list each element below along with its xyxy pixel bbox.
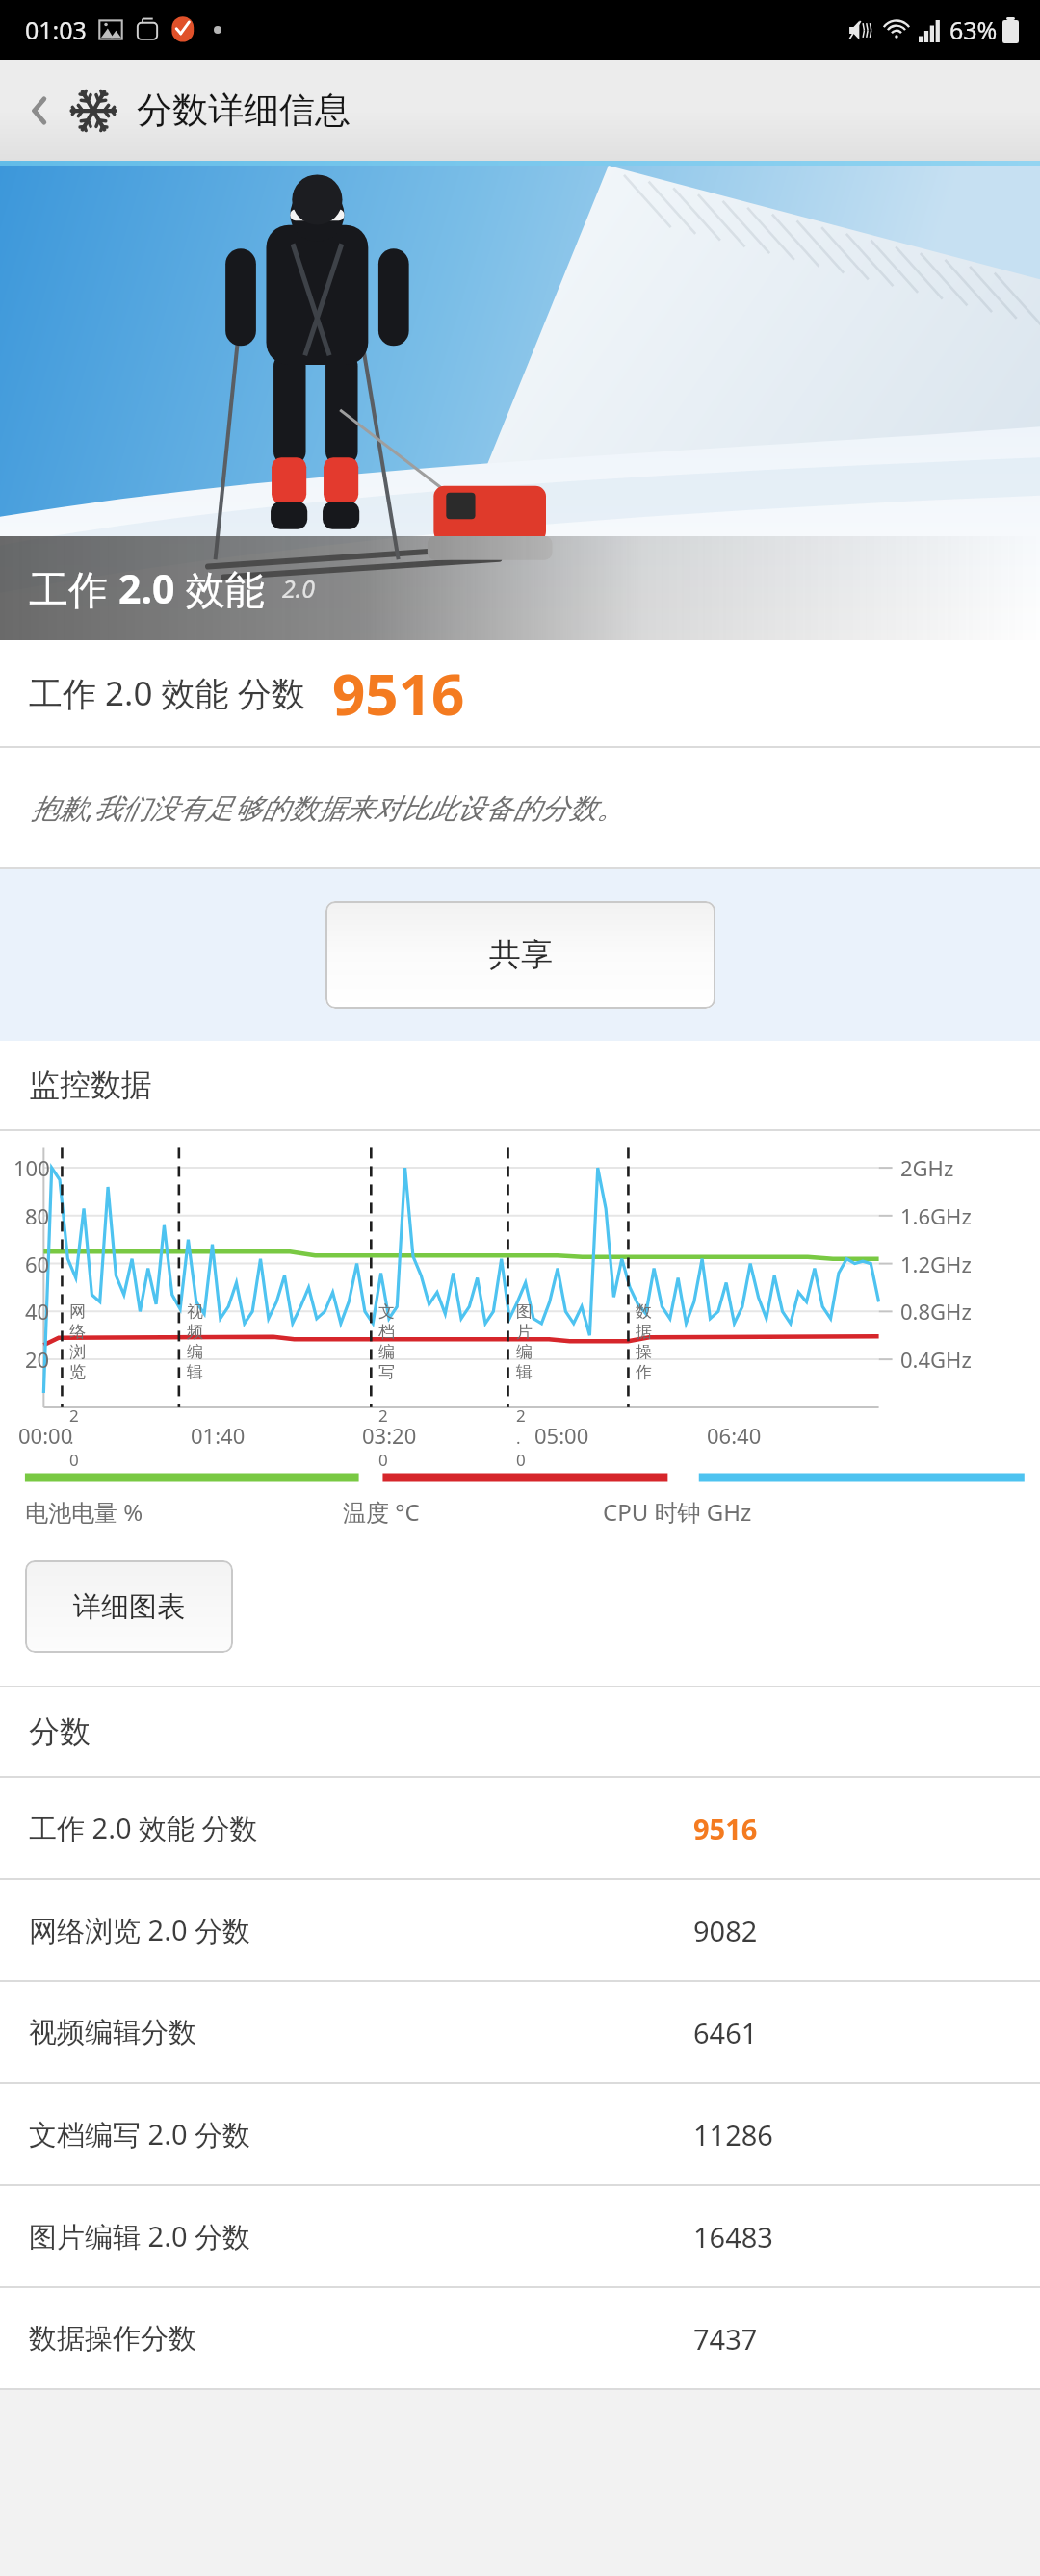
staticText: 0.8GHz (900, 1297, 972, 1326)
staticText: 电池电量 % (25, 1496, 143, 1528)
staticText: . (516, 1427, 521, 1449)
staticText: 2.0 (118, 561, 175, 615)
staticText: 工作 2.0 效能 分数 (29, 670, 305, 716)
staticText: . (378, 1427, 383, 1449)
staticText: 片 (516, 1322, 533, 1342)
staticText: 9516 (693, 1810, 758, 1847)
button[interactable]: 共享 (325, 901, 715, 1009)
staticText: 写 (378, 1362, 395, 1382)
staticText: CPU 时钟 GHz (603, 1496, 752, 1528)
staticText: 9516 (332, 654, 465, 733)
staticText: 据 (636, 1322, 652, 1342)
staticText: 16483 (693, 2218, 773, 2255)
staticText: . (69, 1427, 74, 1449)
staticText: 监控数据 (29, 1066, 152, 1104)
staticText: 数 (636, 1301, 652, 1322)
staticText: 60 (25, 1249, 50, 1278)
staticText: 01:03 (25, 13, 87, 46)
staticText: 2GHz (900, 1153, 954, 1182)
staticText: 览 (69, 1362, 86, 1382)
staticText: 63% (949, 13, 998, 46)
staticText: 2.0 (282, 572, 315, 605)
staticText: 作 (636, 1362, 652, 1382)
staticText: 络 (69, 1322, 86, 1342)
staticText: 共享 (489, 935, 553, 975)
staticText: 2 (516, 1404, 526, 1427)
staticText: 分数 (29, 1713, 91, 1751)
staticText: 06:40 (707, 1421, 762, 1450)
staticText: 图 (516, 1301, 533, 1322)
staticText: 2 (69, 1404, 79, 1427)
staticText: 2 (378, 1404, 388, 1427)
staticText: 数据操作分数 (29, 2321, 196, 2357)
staticText: 0 (378, 1449, 388, 1471)
staticText: 20 (25, 1345, 50, 1374)
staticText: 辑 (516, 1362, 533, 1382)
staticText: 编 (187, 1342, 203, 1362)
staticText: 7437 (693, 2320, 758, 2357)
staticText: 00:00 (18, 1421, 73, 1450)
staticText: 工作 2.0 效能 分数 (29, 1809, 258, 1847)
staticText: 工作 (29, 561, 118, 615)
staticText: 分数详细信息 (137, 88, 351, 133)
staticText: 0 (516, 1449, 526, 1471)
staticText: 9082 (693, 1912, 758, 1949)
staticText: 11286 (693, 2116, 773, 2153)
button[interactable]: Back (12, 82, 69, 140)
staticText: 1.6GHz (900, 1201, 972, 1230)
staticText: 05:00 (534, 1421, 589, 1450)
staticText: 详细图表 (73, 1589, 185, 1625)
staticText: 100 (13, 1153, 50, 1182)
button[interactable]: 图片编辑 2.0 分数 (0, 2186, 1040, 2286)
staticText: 0.4GHz (900, 1345, 972, 1374)
button[interactable]: 详细图表 (25, 1560, 233, 1653)
staticText: 文档编写 2.0 分数 (29, 2115, 251, 2153)
staticText: 辑 (187, 1362, 203, 1382)
staticText: 编 (378, 1342, 395, 1362)
staticText: 40 (25, 1297, 50, 1326)
staticText: 图片编辑 2.0 分数 (29, 2217, 251, 2255)
staticText: 03:20 (362, 1421, 417, 1450)
staticText: 01:40 (191, 1421, 246, 1450)
button[interactable]: 工作 2.0 效能 分数 (0, 1778, 1040, 1878)
staticText: 6461 (693, 2014, 758, 2051)
button[interactable]: 数据操作分数 (0, 2288, 1040, 2388)
staticText: 频 (187, 1322, 203, 1342)
staticText: 浏 (69, 1342, 86, 1362)
staticText: 1.2GHz (900, 1249, 972, 1278)
staticText: 视 (187, 1301, 203, 1322)
staticText: 效能 (175, 561, 265, 615)
staticText: 网 (69, 1301, 86, 1322)
button[interactable]: 工作 2.0 效能 分数 (0, 640, 1040, 746)
staticText: 温度 °C (343, 1496, 420, 1528)
button[interactable]: 网络浏览 2.0 分数 (0, 1880, 1040, 1980)
staticText: 抱歉,我们没有足够的数据来对比此设备的分数。 (31, 788, 625, 827)
staticText: 操 (636, 1342, 652, 1362)
staticText: 编 (516, 1342, 533, 1362)
button[interactable]: 视频编辑分数 (0, 1982, 1040, 2082)
button[interactable]: 文档编写 2.0 分数 (0, 2084, 1040, 2184)
staticText: 文 (378, 1301, 395, 1322)
staticText: 0 (69, 1449, 79, 1471)
staticText: 网络浏览 2.0 分数 (29, 1911, 251, 1949)
staticText: 档 (378, 1322, 395, 1342)
staticText: 视频编辑分数 (29, 2015, 196, 2050)
staticText: 80 (25, 1201, 50, 1230)
